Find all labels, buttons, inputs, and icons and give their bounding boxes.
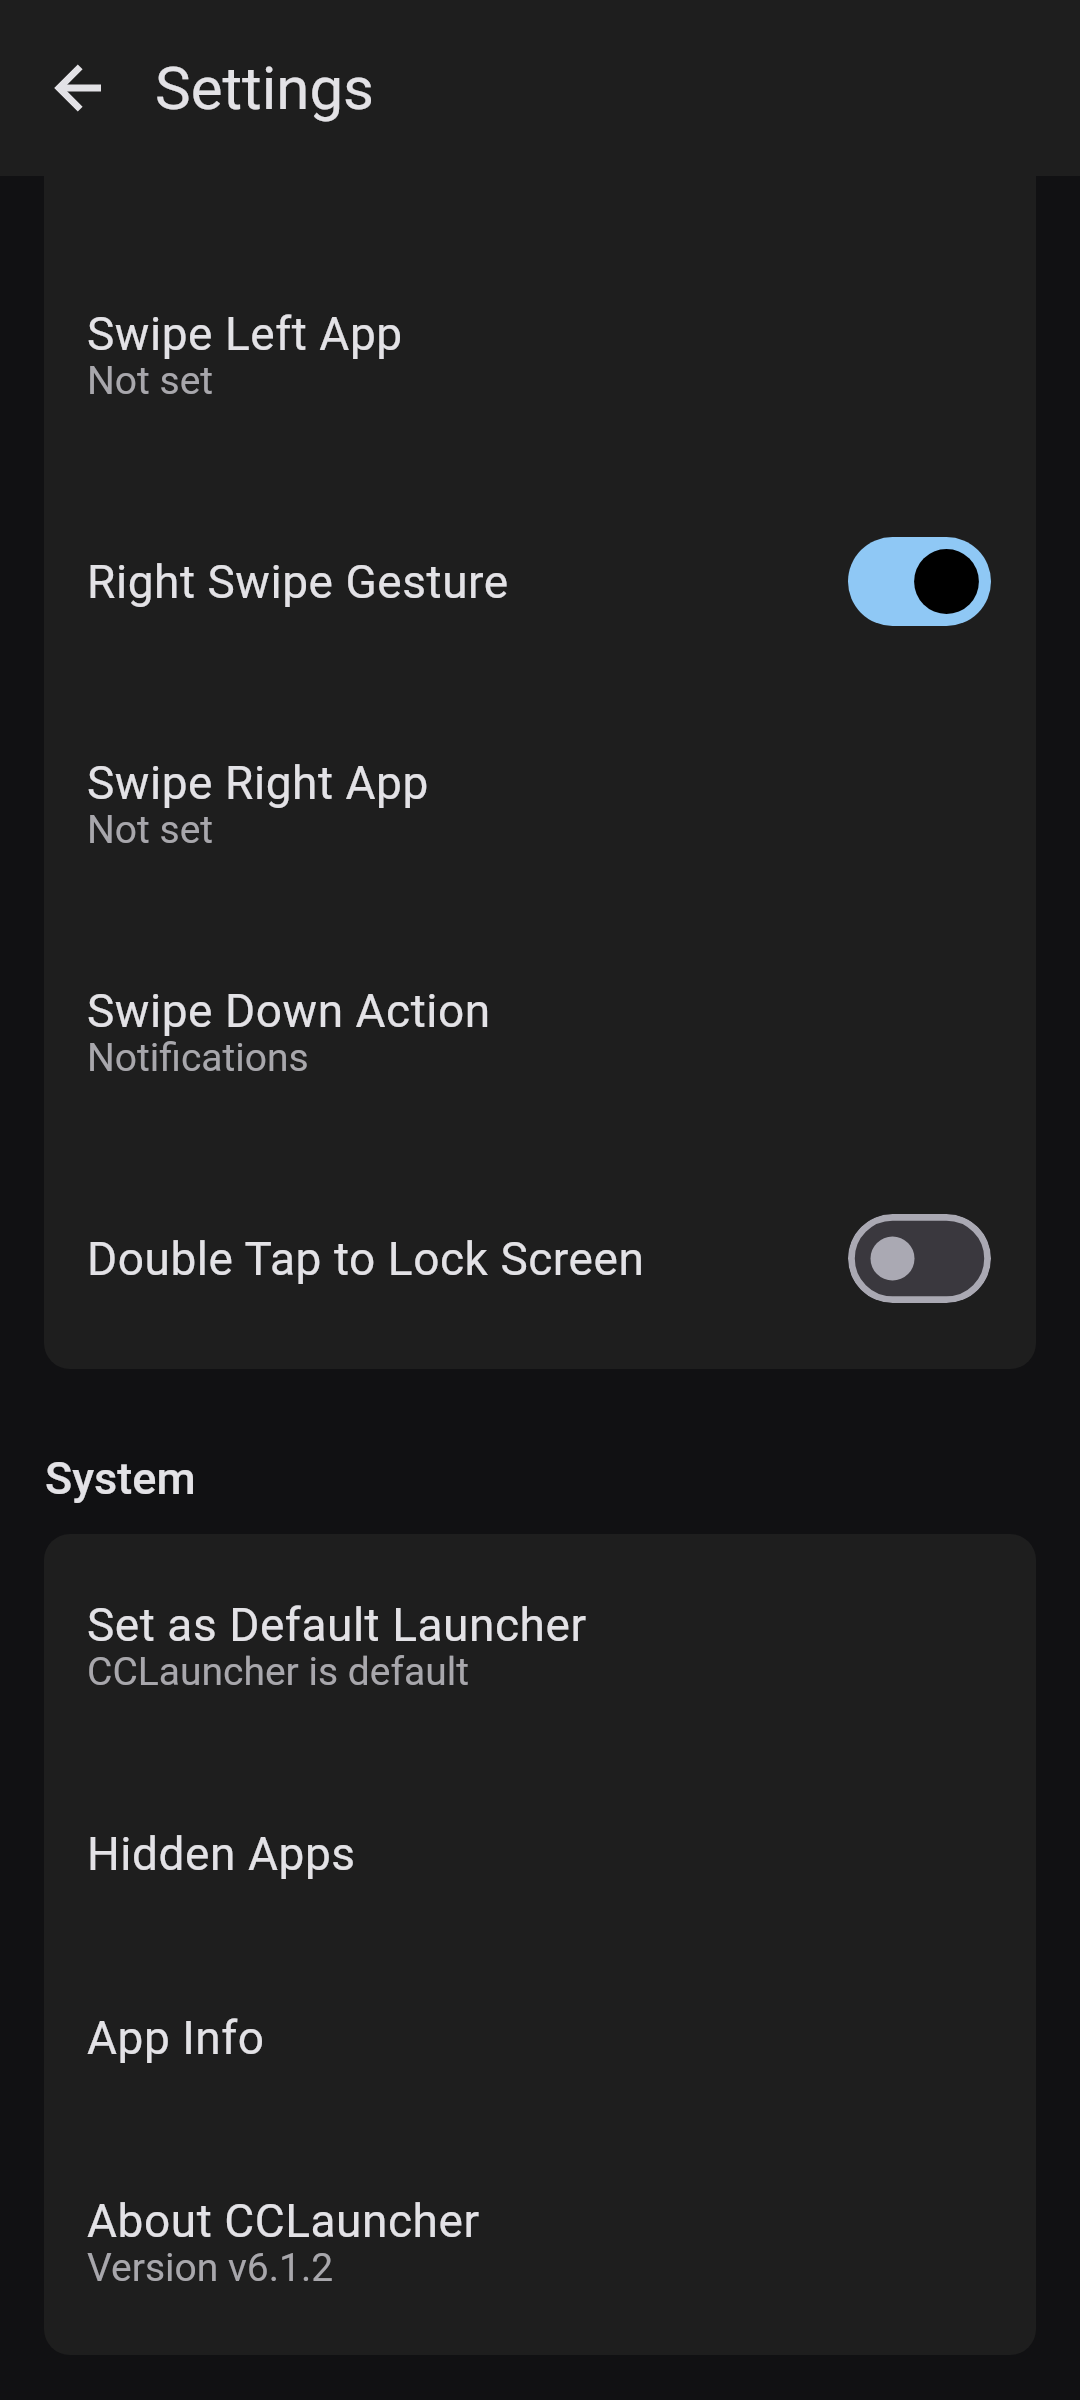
button[interactable]: Toggle off (848, 1212, 991, 1305)
button[interactable]: Double Tap to Lock Screen (44, 1148, 1036, 1369)
staticText: Settings (155, 53, 375, 123)
button[interactable]: Back (36, 44, 124, 132)
button[interactable]: Swipe Right App (44, 692, 1036, 920)
button[interactable]: App Info (44, 1946, 1036, 2130)
staticText: System (45, 1452, 196, 1505)
button[interactable]: Set as Default Launcher (44, 1534, 1036, 1762)
button[interactable]: Swipe Left App (44, 243, 1036, 471)
staticText: Notifications (87, 1035, 309, 1081)
staticText: Version v6.1.2 (87, 2245, 334, 2291)
staticText: Hidden Apps (87, 1827, 356, 1881)
staticText: Not set (87, 358, 214, 404)
staticText: Swipe Down Action (87, 984, 491, 1038)
staticText: Double Tap to Lock Screen (87, 1232, 645, 1286)
staticText: CCLauncher is default (87, 1649, 469, 1695)
staticText: Swipe Right App (87, 756, 429, 810)
button[interactable]: Right Swipe Gesture (44, 471, 1036, 692)
button[interactable]: About CCLauncher (44, 2130, 1036, 2355)
staticText: App Info (87, 2011, 265, 2065)
staticText: Swipe Left App (87, 307, 403, 361)
button[interactable]: Swipe Down Action (44, 920, 1036, 1148)
staticText: Set as Default Launcher (87, 1598, 587, 1652)
staticText: Not set (87, 807, 214, 853)
staticText: About CCLauncher (87, 2194, 480, 2248)
button[interactable]: Hidden Apps (44, 1762, 1036, 1946)
staticText: Right Swipe Gesture (87, 555, 509, 609)
button[interactable]: Toggle on (848, 535, 991, 628)
